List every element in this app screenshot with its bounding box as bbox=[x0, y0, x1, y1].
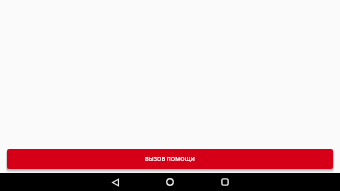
button[interactable]: ВЫЗОВ ПОМОЩИ bbox=[7, 149, 333, 169]
staticText: ВЫЗОВ ПОМОЩИ bbox=[145, 155, 195, 163]
button[interactable]: Back bbox=[101, 173, 129, 191]
button[interactable]: Home bbox=[156, 173, 184, 191]
button[interactable]: Recent apps bbox=[211, 173, 239, 191]
